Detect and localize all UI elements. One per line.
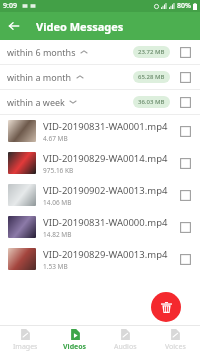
staticText: VID-20190831-WA0001.mp4: [43, 120, 168, 133]
staticText: 80%: [177, 1, 191, 11]
staticText: Video Messages: [36, 19, 124, 34]
staticText: 1.53 MB: [43, 262, 68, 271]
button[interactable]: Back: [0, 12, 28, 40]
button[interactable]: Select: [177, 219, 193, 235]
button[interactable]: VID-20190829-WA0013.mp4: [0, 243, 200, 275]
staticText: within a month: [7, 71, 72, 83]
staticText: Voices: [165, 342, 186, 352]
staticText: within 6 months: [7, 46, 76, 58]
staticText: 23.72 MB: [138, 48, 165, 56]
staticText: VID-20190829-WA0013.mp4: [43, 248, 168, 261]
button[interactable]: within 6 months: [0, 40, 200, 64]
staticText: Audios: [114, 342, 137, 352]
button[interactable]: Select: [177, 187, 193, 203]
button[interactable]: VID-20190831-WA0001.mp4: [0, 115, 200, 147]
button[interactable]: Images: [0, 326, 50, 355]
button[interactable]: Voices: [150, 326, 200, 355]
staticText: VID-20190902-WA0013.mp4: [43, 184, 168, 197]
button[interactable]: Select: [177, 94, 193, 110]
staticText: VID-20190829-WA0014.mp4: [43, 152, 168, 165]
staticText: 36.03 MB: [138, 98, 165, 106]
button[interactable]: within a week: [0, 90, 200, 114]
button[interactable]: Audios: [100, 326, 150, 355]
staticText: 14.06 MB: [43, 198, 72, 207]
staticText: 975.16 KB: [43, 166, 74, 175]
button[interactable]: VID-20190902-WA0013.mp4: [0, 179, 200, 211]
button[interactable]: Select: [177, 123, 193, 139]
button[interactable]: Videos: [50, 326, 100, 355]
staticText: 65.28 MB: [138, 73, 165, 81]
button[interactable]: Select: [177, 155, 193, 171]
button[interactable]: Select: [177, 44, 193, 60]
staticText: VID-20190831-WA0000.mp4: [43, 216, 168, 229]
staticText: within a week: [7, 96, 65, 108]
staticText: 14.82 MB: [43, 230, 72, 239]
button[interactable]: Delete: [151, 292, 181, 322]
button[interactable]: Select: [177, 69, 193, 85]
button[interactable]: within a month: [0, 65, 200, 89]
button[interactable]: VID-20190831-WA0000.mp4: [0, 211, 200, 243]
staticText: Images: [13, 342, 38, 352]
button[interactable]: Select: [177, 251, 193, 267]
staticText: Videos: [63, 342, 87, 352]
staticText: 9:09: [3, 1, 17, 11]
staticText: 4.67 MB: [43, 134, 68, 143]
button[interactable]: VID-20190829-WA0014.mp4: [0, 147, 200, 179]
